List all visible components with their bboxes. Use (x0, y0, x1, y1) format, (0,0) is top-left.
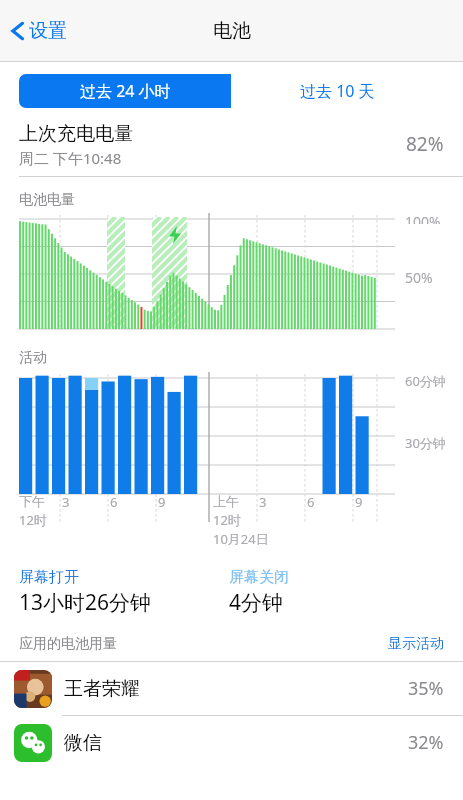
staticText: 上午 (213, 493, 239, 509)
staticText: 10月24日 (213, 530, 269, 548)
staticText: 4分钟 (229, 588, 284, 617)
staticText: 35% (408, 676, 444, 701)
staticText: 12时 (19, 511, 47, 529)
staticText: 13小时26分钟 (19, 588, 152, 617)
staticText: 3 (259, 493, 267, 511)
staticText: 6 (307, 493, 315, 511)
staticText: 上次充电电量 (19, 122, 133, 146)
staticText: 过去 10 天 (300, 80, 375, 102)
button[interactable]: 微信 (0, 716, 463, 769)
staticText: 30分钟 (405, 434, 446, 452)
staticText: 屏幕打开 (19, 568, 79, 587)
staticText: 12时 (213, 511, 241, 529)
staticText: 屏幕关闭 (229, 568, 289, 587)
staticText: 3 (62, 493, 70, 511)
staticText: 50% (405, 268, 433, 287)
staticText: 王者荣耀 (64, 677, 140, 701)
staticText: 过去 24 小时 (80, 80, 171, 102)
staticText: 60分钟 (405, 372, 446, 390)
staticText: 显示活动 (388, 635, 444, 653)
other: 返回 (10, 19, 26, 43)
staticText: 周二 下午10:48 (19, 148, 122, 168)
staticText: 下午 (19, 493, 45, 509)
staticText: 82% (406, 131, 444, 157)
button[interactable]: 返回 (10, 19, 67, 43)
button[interactable]: 过去 10 天 (231, 74, 444, 108)
staticText: 电池电量 (19, 191, 75, 209)
staticText: 100% (405, 212, 441, 224)
staticText: 电池 (213, 19, 251, 43)
staticText: 32% (408, 730, 444, 755)
button[interactable]: 过去 24 小时 (19, 74, 231, 108)
button[interactable]: 王者荣耀 (0, 662, 463, 715)
staticText: 6 (110, 493, 118, 511)
staticText: 设置 (29, 19, 67, 43)
staticText: 微信 (64, 731, 102, 755)
staticText: 应用的电池用量 (19, 635, 117, 653)
staticText: 活动 (19, 349, 47, 367)
button[interactable]: 显示活动 (388, 635, 444, 653)
staticText: 9 (355, 493, 363, 511)
staticText: 9 (158, 493, 166, 511)
